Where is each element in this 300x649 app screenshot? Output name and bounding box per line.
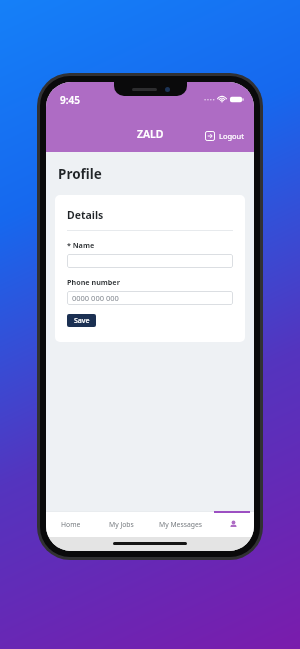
staticText: Save xyxy=(74,316,90,326)
staticText: Logout xyxy=(219,131,244,141)
button[interactable]: Logout xyxy=(202,129,247,143)
button[interactable]: Save xyxy=(67,314,96,327)
staticText: Profile xyxy=(58,165,102,183)
staticText: 0000 000 000 xyxy=(72,293,119,303)
button[interactable]: My Messages xyxy=(147,511,213,537)
staticText: 9:45 xyxy=(60,93,80,107)
staticText: Phone number xyxy=(67,277,120,287)
staticText: * Name xyxy=(67,240,95,250)
button[interactable]: My Jobs xyxy=(96,511,147,537)
staticText: Home xyxy=(61,520,81,529)
button[interactable] xyxy=(67,254,233,268)
staticText: Details xyxy=(67,208,104,222)
button[interactable]: Profile xyxy=(213,511,254,537)
staticText: My Messages xyxy=(159,520,202,529)
staticText: ZALD xyxy=(137,127,164,141)
button[interactable]: Home xyxy=(46,511,96,537)
button[interactable]: 0000 000 000 xyxy=(67,291,233,305)
staticText: My Jobs xyxy=(109,520,134,529)
